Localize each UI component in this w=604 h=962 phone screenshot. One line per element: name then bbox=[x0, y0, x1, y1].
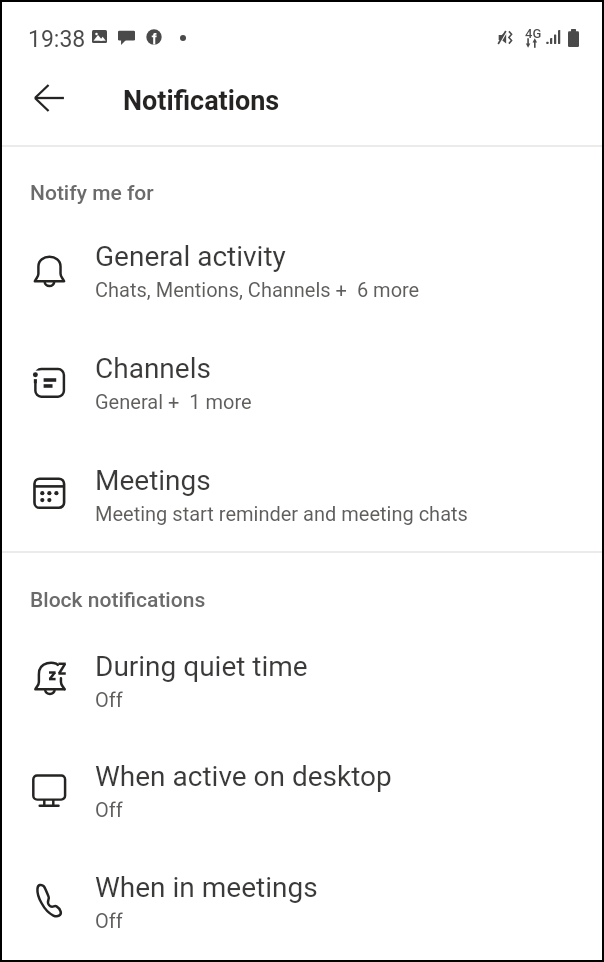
staticText: Meeting start reminder and meeting chats bbox=[95, 502, 468, 525]
staticText: General activity bbox=[95, 240, 286, 273]
button[interactable]: General activity bbox=[2, 223, 602, 313]
button[interactable]: During quiet time bbox=[2, 633, 602, 723]
staticText: Meetings bbox=[95, 464, 211, 497]
staticText: 4G bbox=[525, 26, 542, 41]
staticText: When active on desktop bbox=[95, 760, 392, 793]
button[interactable]: When active on desktop bbox=[2, 743, 602, 833]
staticText: 19:38 bbox=[28, 26, 86, 53]
button[interactable]: Channels bbox=[2, 335, 602, 425]
staticText: Channels bbox=[95, 352, 211, 385]
staticText: Chats, Mentions, Channels + 6 more bbox=[95, 278, 420, 301]
staticText: Off bbox=[95, 798, 123, 821]
staticText: Notifications bbox=[123, 85, 280, 117]
button[interactable]: Back bbox=[27, 75, 73, 121]
staticText: When in meetings bbox=[95, 871, 318, 904]
button[interactable]: When in meetings bbox=[2, 854, 602, 944]
button[interactable]: Meetings bbox=[2, 447, 602, 537]
staticText: General + 1 more bbox=[95, 390, 252, 413]
staticText: Off bbox=[95, 688, 123, 711]
staticText: Off bbox=[95, 909, 123, 932]
staticText: During quiet time bbox=[95, 650, 308, 683]
staticText: Notify me for bbox=[30, 181, 154, 206]
staticText: Block notifications bbox=[30, 588, 206, 613]
